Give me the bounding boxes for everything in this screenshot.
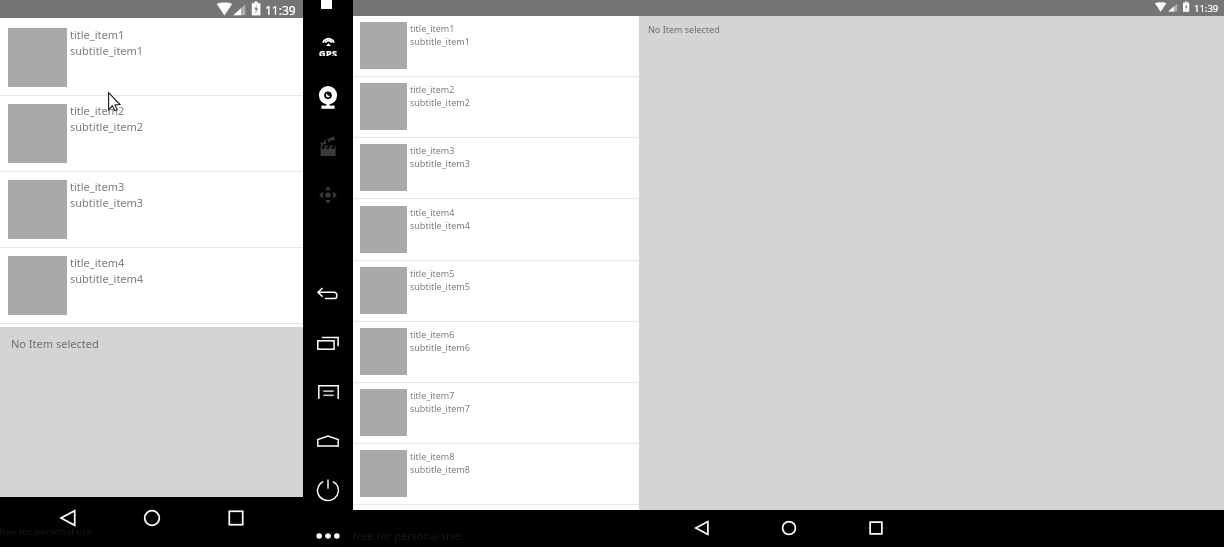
staticText: subtitle_item2: [70, 119, 144, 134]
staticText: title_item3: [410, 144, 455, 156]
button[interactable]: Direction pad: [303, 184, 353, 206]
staticText: subtitle_item5: [410, 280, 470, 292]
staticText: subtitle_item4: [410, 219, 470, 231]
button[interactable]: Recents: [221, 503, 251, 533]
button[interactable]: title_item5: [353, 261, 639, 322]
staticText: subtitle_item4: [70, 271, 144, 286]
button[interactable]: GPS: [303, 38, 353, 56]
staticText: title_item2: [410, 83, 455, 95]
button[interactable]: Menu: [303, 383, 353, 401]
staticText: title_item4: [70, 255, 125, 270]
staticText: GPS: [319, 47, 338, 56]
staticText: title_item3: [70, 179, 125, 194]
staticText: subtitle_item6: [410, 341, 470, 353]
button[interactable]: title_item4: [353, 200, 639, 261]
button[interactable]: title_item1: [0, 20, 303, 96]
button[interactable]: title_item3: [0, 172, 303, 248]
button[interactable]: title_item2: [0, 96, 303, 172]
staticText: free for personal use: [353, 528, 461, 543]
staticText: subtitle_item2: [410, 96, 470, 108]
button[interactable]: More: [303, 532, 353, 540]
staticText: 11:39: [1194, 2, 1219, 15]
button[interactable]: title_item4: [0, 248, 303, 324]
button[interactable]: title_item2: [353, 77, 639, 138]
button[interactable]: Home: [303, 434, 353, 448]
staticText: title_item2: [70, 103, 125, 118]
staticText: free for personal use: [0, 525, 92, 538]
staticText: No Item selected: [648, 23, 720, 35]
staticText: subtitle_item8: [410, 463, 470, 475]
button[interactable]: Back: [303, 284, 353, 302]
button[interactable]: Webcam: [303, 86, 353, 110]
staticText: title_item8: [410, 450, 455, 462]
button[interactable]: title_item3: [353, 138, 639, 199]
staticText: subtitle_item1: [410, 35, 470, 47]
staticText: title_item1: [410, 22, 455, 34]
button[interactable]: title_item7: [353, 383, 639, 444]
staticText: title_item7: [410, 389, 455, 401]
button[interactable]: Overview: [303, 334, 353, 352]
staticText: subtitle_item3: [410, 157, 470, 169]
staticText: title_item1: [70, 27, 125, 42]
staticText: title_item6: [410, 328, 455, 340]
staticText: subtitle_item3: [70, 195, 144, 210]
button[interactable]: Power: [303, 479, 353, 502]
staticText: title_item4: [410, 206, 455, 218]
staticText: subtitle_item7: [410, 402, 470, 414]
button[interactable]: Home: [775, 514, 803, 542]
button[interactable]: Back: [53, 503, 83, 533]
button[interactable]: Home: [137, 503, 167, 533]
button[interactable]: title_item8: [353, 444, 639, 505]
button[interactable]: Record screen: [303, 134, 353, 158]
button[interactable]: title_item1: [353, 16, 639, 77]
staticText: title_item5: [410, 267, 455, 279]
staticText: subtitle_item1: [70, 43, 144, 58]
button[interactable]: Back: [688, 514, 716, 542]
staticText: 11:39: [265, 2, 296, 18]
button[interactable]: title_item6: [353, 322, 639, 383]
button[interactable]: Recents: [862, 514, 890, 542]
staticText: No Item selected: [11, 336, 99, 351]
